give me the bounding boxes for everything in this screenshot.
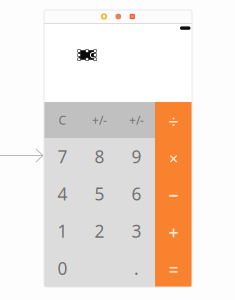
staticText: +/- [129,112,144,128]
button[interactable]: 4 [44,175,81,212]
staticText: 7 [57,145,67,168]
button[interactable]: +/- [118,102,155,138]
button[interactable]: +/- [81,102,118,138]
button[interactable]: Multiply [155,139,192,176]
staticText: 9 [131,145,141,168]
staticText: 6 [131,182,141,205]
button[interactable]: . [118,250,155,287]
staticText: 3 [131,220,141,243]
button[interactable]: Subtract [155,176,192,213]
staticText: 1 [57,220,67,243]
button[interactable]: 6 [118,175,155,212]
button[interactable]: Equals [155,250,192,287]
button[interactable]: 1 [44,212,81,250]
staticText: C [58,112,66,128]
button[interactable]: Add [155,213,192,250]
button[interactable]: 9 [118,138,155,175]
staticText: 2 [94,220,104,243]
staticText: . [134,257,139,280]
button[interactable]: 0 [44,250,81,287]
button[interactable]: Divide [155,102,192,139]
button[interactable]: C [44,102,81,138]
button[interactable]: 7 [44,138,81,175]
staticText: 4 [57,182,67,205]
button[interactable]: 8 [81,138,118,175]
staticText: 0 [57,257,67,280]
staticText: 8 [94,145,104,168]
button[interactable]: 3 [118,212,155,250]
button[interactable]: 5 [81,175,118,212]
button[interactable]: 2 [81,212,118,250]
staticText: +/- [92,112,107,128]
staticText: 5 [94,182,104,205]
